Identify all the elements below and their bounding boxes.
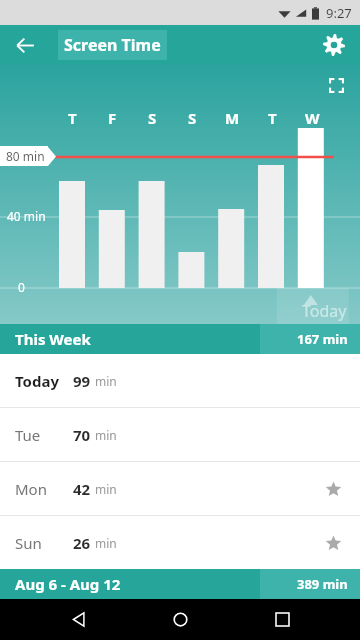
button[interactable]: Settings xyxy=(317,28,351,62)
button[interactable]: Fullscreen xyxy=(322,71,350,99)
staticText: W xyxy=(305,108,320,128)
button[interactable]: Back xyxy=(8,28,42,62)
staticText: 167 min xyxy=(297,330,348,348)
staticText: 9:27 xyxy=(326,4,352,22)
staticText: min xyxy=(95,535,117,551)
staticText: Aug 6 - Aug 12 xyxy=(15,574,121,594)
staticText: Today xyxy=(15,371,60,391)
button[interactable]: Recent apps xyxy=(258,599,306,640)
staticText: S xyxy=(188,108,197,128)
staticText: min xyxy=(95,481,117,497)
staticText: F xyxy=(108,108,117,128)
button[interactable]: This Week xyxy=(0,324,360,354)
staticText: min xyxy=(95,373,117,389)
staticText: 70 xyxy=(73,425,91,445)
staticText: Sun xyxy=(15,533,42,553)
staticText: 26 xyxy=(73,533,91,553)
staticText: 42 xyxy=(73,479,91,499)
staticText: M xyxy=(225,108,240,128)
staticText: 0 xyxy=(18,279,25,295)
button[interactable]: Tue xyxy=(0,408,360,461)
staticText: Screen Time xyxy=(64,34,161,56)
staticText: T xyxy=(68,108,77,128)
button[interactable]: Today xyxy=(0,354,360,407)
button[interactable]: Back xyxy=(54,599,102,640)
staticText: 99 xyxy=(73,371,91,391)
button[interactable]: Home xyxy=(156,599,204,640)
staticText: 389 min xyxy=(297,575,348,593)
staticText: min xyxy=(95,427,117,443)
button[interactable]: Favorite xyxy=(320,476,346,502)
staticText: T xyxy=(268,108,277,128)
staticText: Today xyxy=(302,300,347,322)
button[interactable]: Sun xyxy=(0,516,360,569)
button[interactable]: Screen Time xyxy=(64,34,161,56)
button[interactable]: Aug 6 - Aug 12 xyxy=(0,569,360,599)
staticText: This Week xyxy=(15,329,91,349)
staticText: S xyxy=(148,108,157,128)
staticText: Tue xyxy=(15,425,41,445)
button[interactable]: Mon xyxy=(0,462,360,515)
staticText: 80 min xyxy=(6,148,45,164)
staticText: 40 min xyxy=(7,208,46,224)
button[interactable]: Favorite xyxy=(320,530,346,556)
staticText: Mon xyxy=(15,479,47,499)
